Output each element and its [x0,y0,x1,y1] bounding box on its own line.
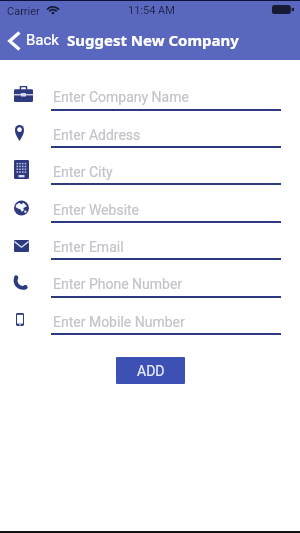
other: Company name [14,86,33,102]
staticText: 11:54 AM [128,4,175,17]
button[interactable]: ADD [116,357,185,384]
staticText: Enter Company Name [53,89,189,105]
other: Email [14,240,29,252]
other: Phone number [14,276,27,289]
staticText: ADD [137,363,165,379]
staticText: Enter Phone Number [53,276,183,292]
other: City [14,160,29,179]
button[interactable]: Enter Mobile Number [0,306,300,342]
button[interactable]: Enter Email [0,231,300,267]
staticText: Carrier [7,5,40,18]
other: Mobile number [16,313,24,326]
button[interactable]: Enter Company Name [0,81,300,117]
other: Address [15,125,24,141]
staticText: Enter Address [53,127,141,143]
staticText: Enter Website [53,202,140,218]
button[interactable]: Enter Website [0,194,300,230]
staticText: Suggest New Company [67,30,239,50]
other: Website [14,201,29,215]
staticText: Enter City [53,164,113,180]
staticText: Back [26,31,59,49]
button[interactable]: Back [4,26,62,56]
staticText: Enter Email [53,239,124,255]
button[interactable]: Enter City [0,156,300,192]
button[interactable]: Enter Phone Number [0,268,300,304]
button[interactable]: Enter Address [0,119,300,155]
staticText: Enter Mobile Number [53,314,185,330]
